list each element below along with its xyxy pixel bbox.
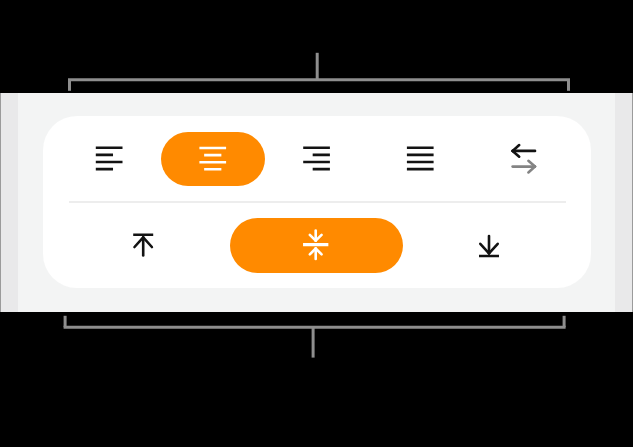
button[interactable]: Justify xyxy=(397,136,445,182)
button[interactable]: Align centre xyxy=(161,132,265,186)
button[interactable]: Align middle xyxy=(230,218,403,273)
button[interactable]: Align bottom xyxy=(466,224,512,268)
button[interactable]: Align left xyxy=(85,136,133,182)
button[interactable]: Text direction xyxy=(501,136,547,182)
button[interactable]: Align right xyxy=(293,136,341,182)
button[interactable]: Align top xyxy=(120,224,166,268)
